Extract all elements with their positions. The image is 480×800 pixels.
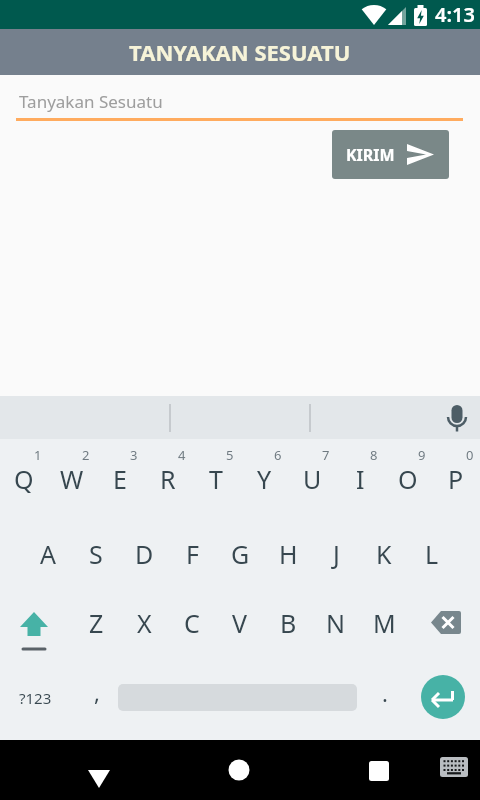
staticText: V bbox=[232, 606, 248, 640]
button[interactable]: . bbox=[361, 668, 409, 728]
button[interactable]: I bbox=[336, 449, 384, 509]
staticText: B bbox=[280, 606, 297, 640]
staticText: F bbox=[186, 537, 199, 571]
button[interactable]: S bbox=[72, 524, 120, 584]
button[interactable]: C bbox=[168, 593, 216, 653]
staticText: TANYAKAN SESUATU bbox=[129, 37, 351, 67]
button[interactable]: O bbox=[384, 449, 432, 509]
staticText: H bbox=[279, 537, 298, 571]
staticText: T bbox=[209, 462, 223, 496]
staticText: Y bbox=[257, 462, 272, 496]
button[interactable]: A bbox=[24, 524, 72, 584]
button[interactable]: K bbox=[360, 524, 408, 584]
staticText: U bbox=[303, 462, 322, 496]
staticText: W bbox=[60, 462, 84, 496]
staticText: 8 bbox=[370, 446, 378, 464]
button[interactable] bbox=[349, 740, 409, 800]
staticText: 4 bbox=[178, 446, 186, 464]
staticText: 3 bbox=[130, 446, 138, 464]
staticText: E bbox=[113, 462, 127, 496]
button[interactable]: U bbox=[288, 449, 336, 509]
staticText: 6 bbox=[274, 446, 282, 464]
staticText: . bbox=[382, 678, 388, 708]
staticText: Tanyakan Sesuatu bbox=[19, 90, 163, 113]
staticText: 9 bbox=[418, 446, 426, 464]
button[interactable]: R bbox=[144, 449, 192, 509]
staticText: S bbox=[89, 537, 103, 571]
button[interactable]: D bbox=[120, 524, 168, 584]
button[interactable]: E bbox=[96, 449, 144, 509]
staticText: D bbox=[135, 537, 154, 571]
staticText: L bbox=[425, 537, 439, 571]
button[interactable] bbox=[6, 593, 62, 653]
button[interactable]: ?123 bbox=[8, 668, 62, 728]
button[interactable]: J bbox=[312, 524, 360, 584]
button[interactable]: H bbox=[264, 524, 312, 584]
button[interactable]: , bbox=[73, 668, 121, 728]
button[interactable]: KIRIM bbox=[332, 130, 449, 179]
button[interactable]: P bbox=[432, 449, 480, 509]
button[interactable]: Q bbox=[0, 449, 48, 509]
button[interactable]: M bbox=[360, 593, 408, 653]
button[interactable]: Y bbox=[240, 449, 288, 509]
staticText: R bbox=[160, 462, 176, 496]
button[interactable]: X bbox=[120, 593, 168, 653]
button[interactable] bbox=[434, 756, 474, 784]
button[interactable]: W bbox=[48, 449, 96, 509]
staticText: , bbox=[94, 677, 100, 707]
button[interactable] bbox=[209, 740, 269, 800]
staticText: O bbox=[398, 462, 418, 496]
staticText: G bbox=[231, 537, 250, 571]
button[interactable]: L bbox=[408, 524, 456, 584]
staticText: 7 bbox=[322, 446, 330, 464]
button[interactable]: N bbox=[312, 593, 360, 653]
staticText: 5 bbox=[226, 446, 234, 464]
button[interactable]: Z bbox=[72, 593, 120, 653]
staticText: A bbox=[40, 537, 56, 571]
staticText: K bbox=[376, 537, 392, 571]
staticText: Z bbox=[89, 606, 104, 640]
button[interactable]: F bbox=[168, 524, 216, 584]
button[interactable] bbox=[418, 593, 474, 653]
staticText: KIRIM bbox=[346, 144, 395, 166]
button[interactable]: B bbox=[264, 593, 312, 653]
button[interactable] bbox=[442, 402, 472, 438]
staticText: P bbox=[448, 462, 464, 496]
staticText: Q bbox=[14, 462, 34, 496]
staticText: ?123 bbox=[19, 688, 52, 708]
button[interactable]: V bbox=[216, 593, 264, 653]
staticText: 1 bbox=[34, 446, 42, 464]
staticText: M bbox=[373, 606, 396, 640]
staticText: I bbox=[356, 462, 365, 496]
staticText: 0 bbox=[466, 446, 474, 464]
staticText: 2 bbox=[82, 446, 90, 464]
button[interactable] bbox=[69, 740, 129, 800]
staticText: N bbox=[326, 606, 346, 640]
staticText: C bbox=[184, 606, 200, 640]
button[interactable] bbox=[421, 675, 465, 719]
staticText: X bbox=[137, 606, 152, 640]
button[interactable]: G bbox=[216, 524, 264, 584]
staticText: 4:13 bbox=[435, 1, 475, 28]
staticText: J bbox=[333, 537, 340, 571]
button[interactable]: T bbox=[192, 449, 240, 509]
